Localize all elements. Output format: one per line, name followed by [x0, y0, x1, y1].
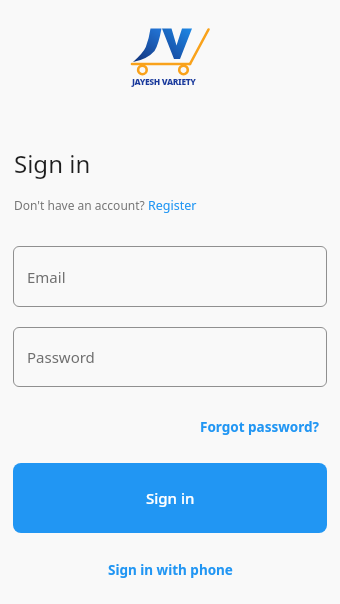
staticText: Password — [27, 347, 95, 367]
button[interactable]: Sign in — [13, 463, 327, 533]
staticText: JAYESH VARIETY — [132, 76, 196, 88]
button[interactable]: Register — [148, 197, 197, 214]
staticText: Email — [27, 267, 66, 287]
staticText: Don't have an account? — [14, 197, 148, 213]
button[interactable]: Forgot password? — [200, 418, 319, 436]
button[interactable]: Password — [13, 327, 327, 387]
staticText: Sign in — [146, 488, 195, 508]
staticText: Sign in — [14, 147, 340, 180]
button[interactable]: Email — [13, 246, 327, 307]
button[interactable]: Sign in with phone — [108, 561, 233, 579]
